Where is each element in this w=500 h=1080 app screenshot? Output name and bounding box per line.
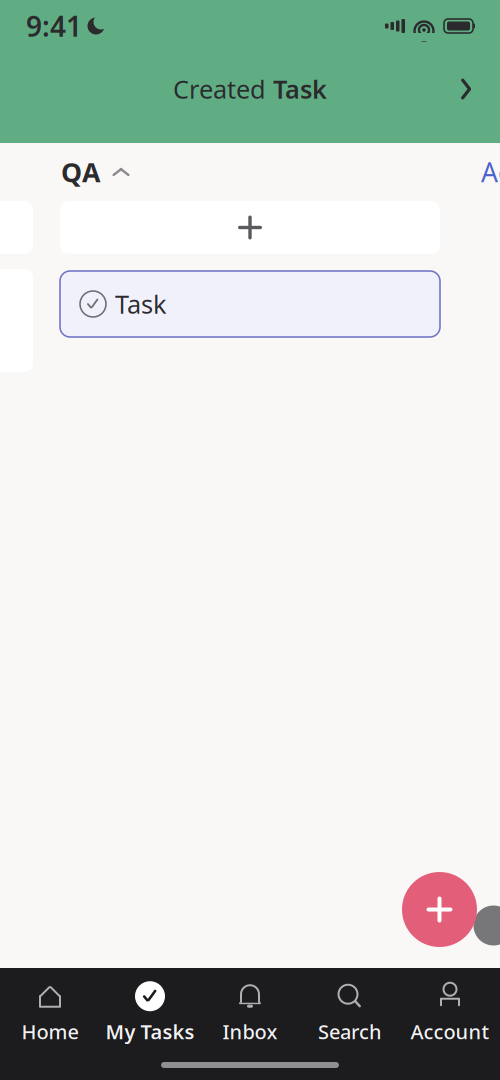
staticText: My Tasks [105,1018,194,1045]
button[interactable]: New task [402,872,477,947]
button[interactable]: Add task [60,201,440,254]
button[interactable]: My Tasks [100,982,200,1044]
button[interactable]: Account [400,982,500,1044]
staticText: Account [410,1018,489,1045]
button[interactable]: Inbox [200,982,300,1044]
staticText: Search [318,1018,382,1045]
staticText: Home [21,1018,78,1045]
staticText: Add [481,154,500,190]
staticText: Created [173,72,273,106]
staticText: Task [273,72,327,106]
staticText: Task [115,287,167,321]
staticText: 9:41 [26,7,82,45]
button[interactable]: Open created task [444,67,488,111]
button[interactable]: Search [300,982,400,1044]
button[interactable]: Home [0,982,100,1044]
button[interactable]: Add [481,148,500,196]
staticText: Inbox [222,1018,277,1045]
staticText: QA [61,154,100,190]
button[interactable]: QA [61,148,130,196]
button[interactable]: Task [60,271,440,337]
